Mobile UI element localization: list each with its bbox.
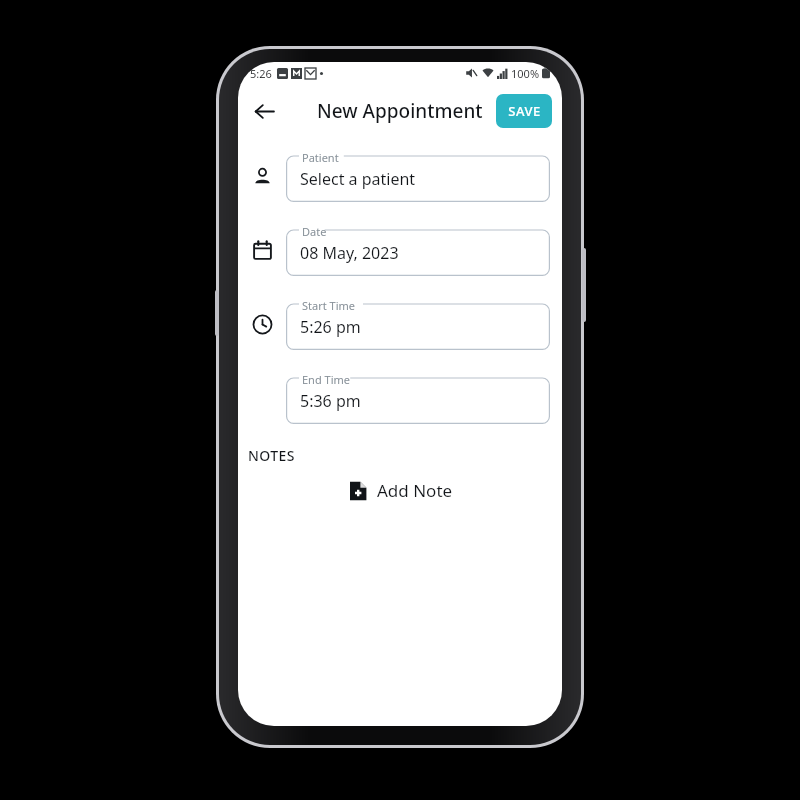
staticText: New Appointment — [317, 98, 483, 124]
button[interactable]: Date — [286, 224, 550, 276]
staticText: 5:26 — [250, 66, 272, 81]
button[interactable]: Back — [244, 91, 284, 131]
button[interactable]: Patient — [286, 150, 550, 202]
staticText: 5:26 pm — [300, 316, 361, 338]
button[interactable]: End Time — [286, 372, 550, 424]
staticText: 08 May, 2023 — [300, 242, 399, 264]
staticText: Patient — [302, 150, 339, 165]
button[interactable]: SAVE — [496, 94, 552, 128]
staticText: Start Time — [302, 298, 355, 313]
staticText: Date — [302, 224, 327, 239]
staticText: 5:36 pm — [300, 390, 361, 412]
staticText: Select a patient — [300, 168, 416, 190]
staticText: End Time — [302, 372, 350, 387]
button[interactable]: Select patient — [245, 159, 279, 193]
button[interactable]: Pick date — [245, 233, 279, 267]
button[interactable]: Start Time — [286, 298, 550, 350]
staticText: NOTES — [248, 446, 295, 465]
staticText: Add Note — [377, 479, 453, 502]
staticText: SAVE — [508, 102, 541, 120]
button[interactable]: Add Note — [238, 479, 562, 502]
button[interactable]: Pick start time — [245, 307, 279, 341]
staticText: 100% — [511, 66, 540, 81]
